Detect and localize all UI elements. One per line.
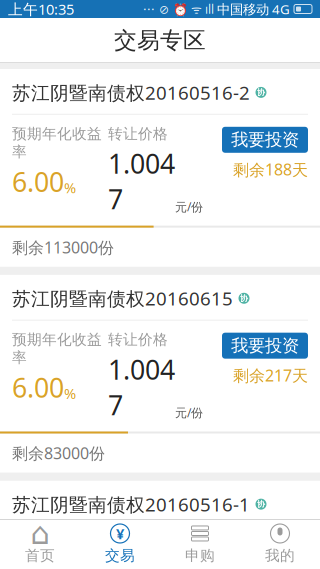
staticText: 元/份 [175, 405, 203, 420]
staticText: 交易 [105, 546, 135, 564]
staticText: 剩余113000份 [12, 237, 114, 258]
staticText: 苏江阴暨南债权20160516-1 [12, 492, 250, 517]
staticText: 转让价格 [108, 125, 168, 143]
staticText: 剩余217天 [233, 365, 308, 386]
staticText: ··· [143, 0, 155, 18]
staticText: 6.00 [12, 164, 64, 199]
staticText: 1.0047 [108, 558, 175, 569]
staticText: 预期年化收益率 [12, 536, 102, 569]
staticText: 元/份 [175, 199, 203, 215]
staticText: 剩余188天 [233, 159, 308, 180]
staticText: 交易专区 [114, 27, 206, 54]
button[interactable]: 我的 [240, 517, 320, 569]
button[interactable]: 我要投资 [222, 127, 308, 153]
staticText: 协 [240, 293, 248, 303]
staticText: 预期年化收益率 [12, 125, 102, 161]
staticText: 协 [257, 499, 265, 509]
staticText: 我要投资 [231, 129, 299, 150]
staticText: 我的 [265, 546, 295, 564]
staticText: 中国移动 4G [217, 0, 290, 18]
staticText: ⌂ [30, 516, 49, 551]
staticText: 1.0047 [108, 352, 175, 422]
staticText: ⊘ ⏰ ᯤ ıll [155, 1, 217, 17]
staticText: 申购 [185, 546, 215, 564]
staticText: 首页 [25, 546, 55, 564]
staticText: 剩余83000份 [12, 442, 105, 464]
button[interactable]: ¥ [80, 517, 160, 569]
staticText: 转让价格 [108, 331, 168, 349]
staticText: % [64, 384, 76, 403]
button[interactable]: ⌂ [0, 517, 80, 569]
staticText: 6.00 [12, 370, 64, 405]
staticText: 我要投资 [231, 541, 299, 562]
staticText: 上午10:35 [8, 0, 74, 19]
staticText: % [64, 178, 76, 197]
staticText: 预期年化收益率 [12, 331, 102, 367]
staticText: 转让价格 [108, 536, 168, 554]
staticText: ¥ [116, 524, 124, 543]
staticText: 我要投资 [231, 335, 299, 356]
button[interactable]: 我要投资 [222, 333, 308, 359]
button[interactable]: 我要投资 [222, 538, 308, 564]
staticText: 1.0047 [108, 146, 175, 217]
staticText: 苏江阴暨南债权20160615 [12, 286, 233, 311]
staticText: 协 [257, 87, 265, 97]
staticText: 苏江阴暨南债权20160516-2 [12, 80, 250, 105]
button[interactable]: 申购 [160, 517, 240, 569]
